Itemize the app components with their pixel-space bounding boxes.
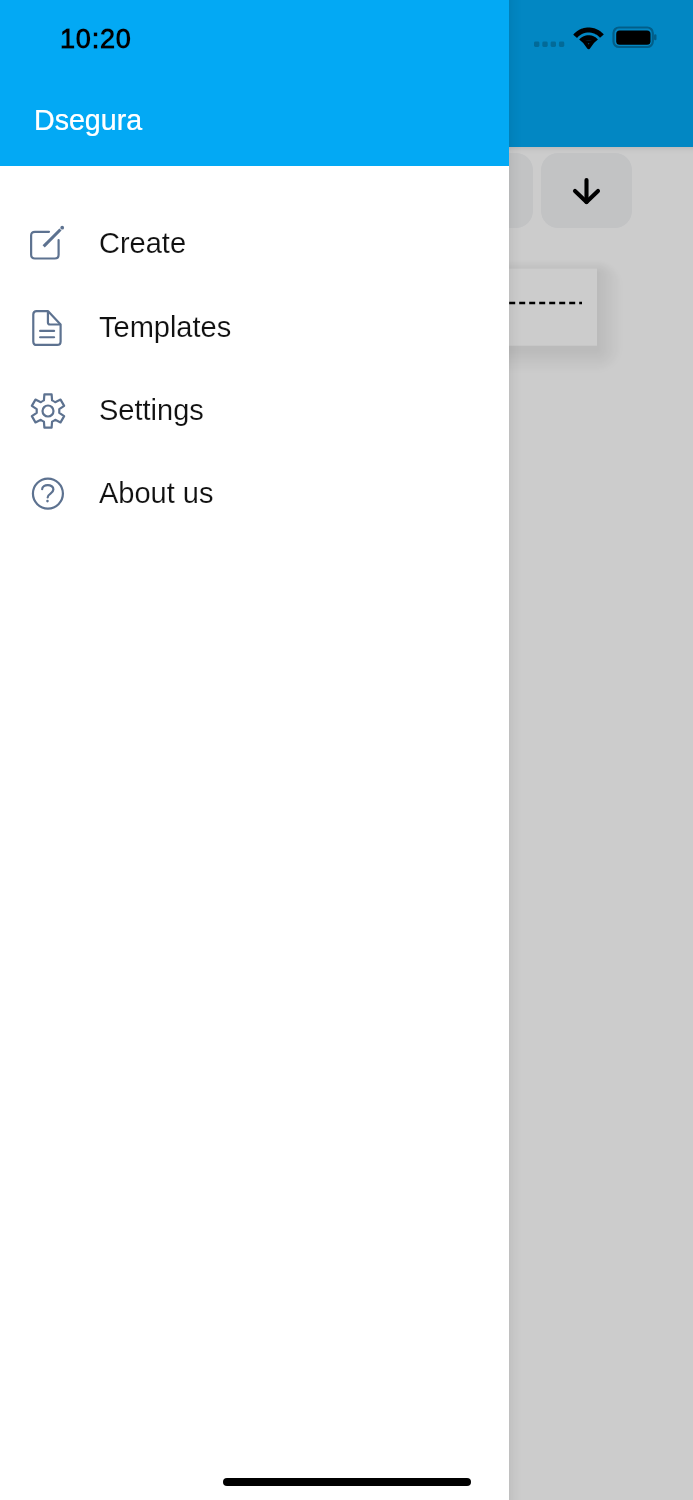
staticText: About us xyxy=(99,477,214,509)
staticText: 10:20 xyxy=(60,24,132,54)
button[interactable]: Create xyxy=(0,203,509,285)
button[interactable]: Upload xyxy=(442,153,533,228)
button[interactable]: About us xyxy=(0,453,509,535)
staticText: Dsegura xyxy=(34,104,143,136)
button[interactable]: Download xyxy=(541,153,632,228)
staticText: Settings xyxy=(99,394,204,426)
staticText: Create xyxy=(99,227,187,259)
button[interactable]: Templates xyxy=(0,287,509,369)
button[interactable]: Settings xyxy=(0,370,509,452)
staticText: Templates xyxy=(99,311,232,343)
